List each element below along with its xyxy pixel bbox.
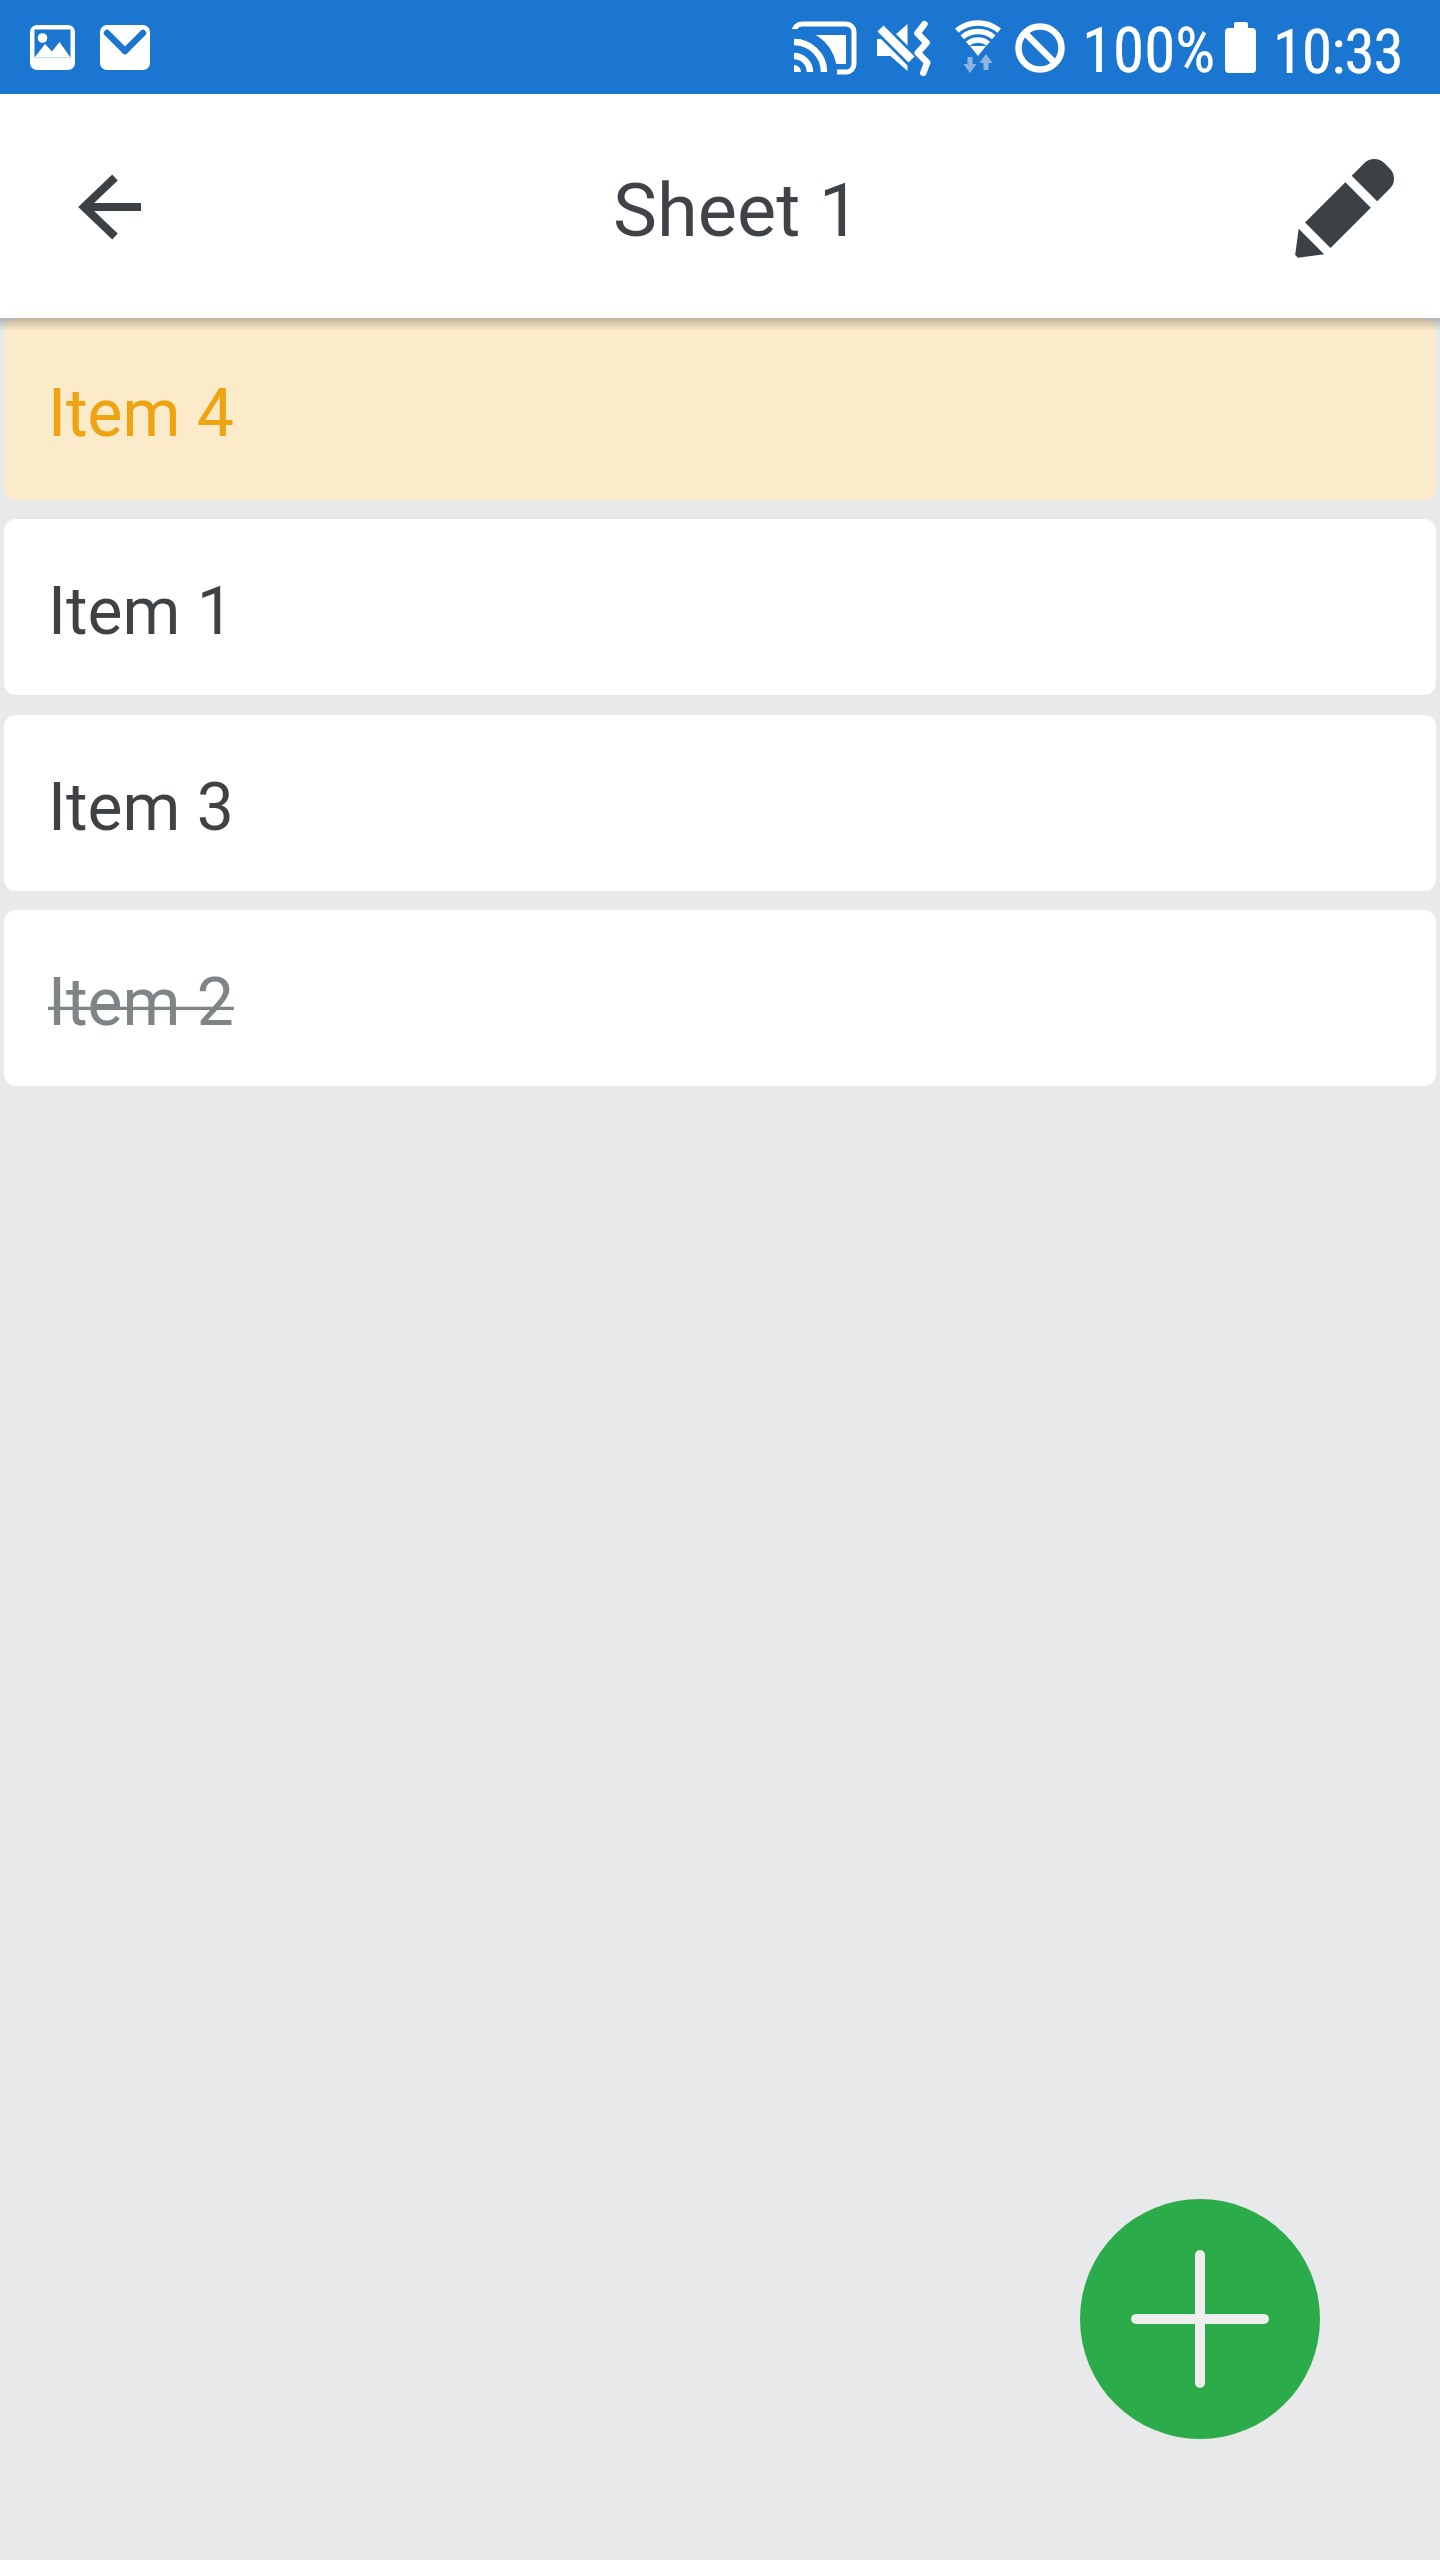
button[interactable]: Item 3 xyxy=(4,715,1436,891)
button[interactable]: Item 1 xyxy=(4,519,1436,695)
button[interactable]: Item 2 xyxy=(4,910,1436,1086)
button[interactable] xyxy=(1080,2199,1320,2439)
staticText: Item 4 xyxy=(48,375,234,452)
button[interactable]: Item 4 xyxy=(4,318,1436,500)
staticText: Item 2 xyxy=(48,964,234,1041)
staticText: Item 3 xyxy=(48,769,234,846)
staticText: 100% xyxy=(1082,14,1216,88)
button[interactable] xyxy=(1248,110,1440,302)
button[interactable] xyxy=(13,110,205,302)
staticText: Sheet 1 xyxy=(613,167,861,254)
staticText: 10:33 xyxy=(1273,16,1403,87)
staticText: Item 1 xyxy=(48,573,234,650)
